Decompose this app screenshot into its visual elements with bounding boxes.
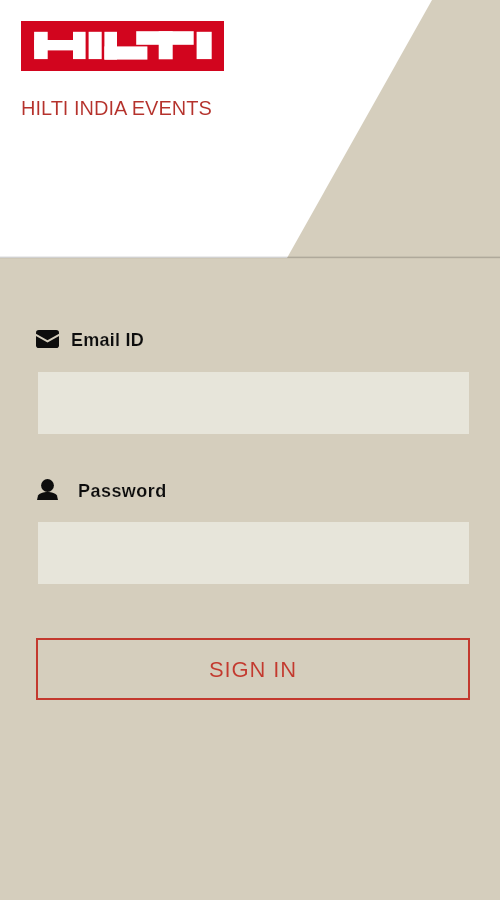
staticText: SIGN IN (209, 657, 297, 682)
staticText: Email ID (71, 330, 145, 349)
staticText: HILTI INDIA EVENTS (21, 97, 212, 119)
staticText: Password (78, 481, 167, 501)
button[interactable]: SIGN IN (37, 639, 469, 699)
